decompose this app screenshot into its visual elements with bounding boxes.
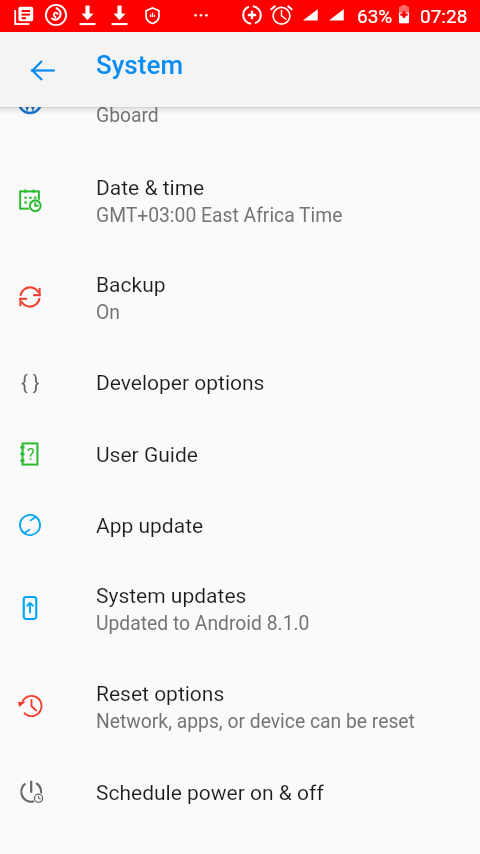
staticText: Date & time: [96, 176, 205, 201]
staticText: System updates: [96, 584, 247, 609]
staticText: 07:28: [420, 5, 468, 27]
button[interactable]: Back: [14, 42, 70, 98]
button[interactable]: Backup: [0, 248, 480, 346]
staticText: Gboard: [96, 104, 159, 127]
button[interactable]: Gboard: [0, 82, 480, 134]
button[interactable]: Reset options: [0, 657, 480, 755]
staticText: Developer options: [96, 371, 265, 396]
staticText: Network, apps, or device can be reset: [96, 710, 415, 733]
staticText: 63%: [357, 5, 393, 27]
button[interactable]: System updates: [0, 559, 480, 657]
staticText: User Guide: [96, 443, 198, 468]
staticText: App update: [96, 514, 204, 539]
staticText: ?: [27, 445, 35, 464]
staticText: System: [96, 50, 184, 80]
staticText: GMT+03:00 East Africa Time: [96, 204, 343, 227]
staticText: Backup: [96, 273, 166, 298]
staticText: Updated to Android 8.1.0: [96, 612, 310, 635]
staticText: { }: [21, 371, 40, 394]
button[interactable]: Date & time: [0, 151, 480, 249]
button[interactable]: { }: [0, 346, 480, 417]
staticText: On: [96, 301, 120, 324]
button[interactable]: App update: [0, 489, 480, 560]
button[interactable]: Schedule power on & off: [0, 756, 480, 827]
button[interactable]: ?: [0, 418, 480, 489]
staticText: Schedule power on & off: [96, 781, 324, 806]
staticText: Reset options: [96, 682, 225, 707]
